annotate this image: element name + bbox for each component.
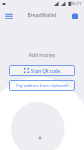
staticText: Pay address from clipboard (16, 83, 68, 88)
staticText: Scan QR code (31, 68, 61, 74)
staticText: Add money (0, 52, 84, 59)
button[interactable]: Scan QR code (9, 65, 75, 76)
button[interactable]: Wallet settings (69, 10, 81, 22)
button[interactable]: Open navigation menu (3, 10, 15, 22)
staticText: 15:11 (71, 1, 82, 6)
staticText: BreadWallet (27, 12, 57, 19)
button[interactable]: Pay address from clipboard (9, 80, 75, 91)
